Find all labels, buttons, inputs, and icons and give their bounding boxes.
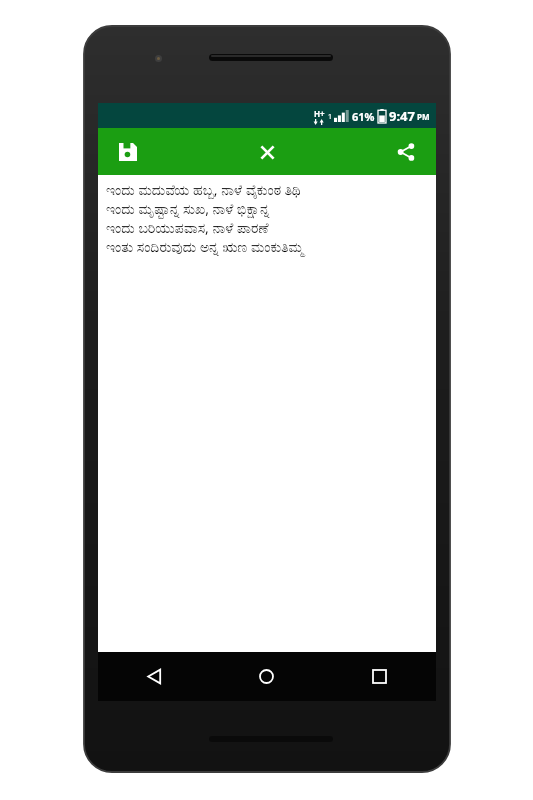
- button[interactable]: Back: [98, 652, 210, 701]
- button[interactable]: Home: [210, 652, 323, 701]
- staticText: ಇಂದು ಬರಿಯುಪವಾಸ, ನಾಳೆ ಪಾರಣೆ: [106, 218, 269, 237]
- staticText: ಇಂದು ಮದುವೆಯ ಹಬ್ಬ, ನಾಳೆ ವೈಕುಂಠ ತಿಥಿ: [106, 180, 302, 199]
- staticText: ಇಂತು ಸಂದಿರುವುದು ಅನ್ನ ಋಣ ಮಂಕುತಿಮ್ಮ: [106, 237, 304, 256]
- staticText: 61%: [352, 109, 375, 124]
- staticText: PM: [417, 111, 430, 122]
- button[interactable]: Share: [384, 130, 428, 174]
- staticText: 1: [328, 112, 333, 122]
- staticText: ಇಂದು ಮೃಷ್ಟಾನ್ನ ಸುಖ, ನಾಳೆ ಭಿಕ್ಷಾನ್ನ: [106, 199, 270, 218]
- staticText: 9:47: [389, 107, 415, 125]
- staticText: H+: [314, 108, 325, 119]
- button[interactable]: Save: [106, 130, 150, 174]
- button[interactable]: Close: [245, 130, 289, 174]
- button[interactable]: Recent apps: [323, 652, 436, 701]
